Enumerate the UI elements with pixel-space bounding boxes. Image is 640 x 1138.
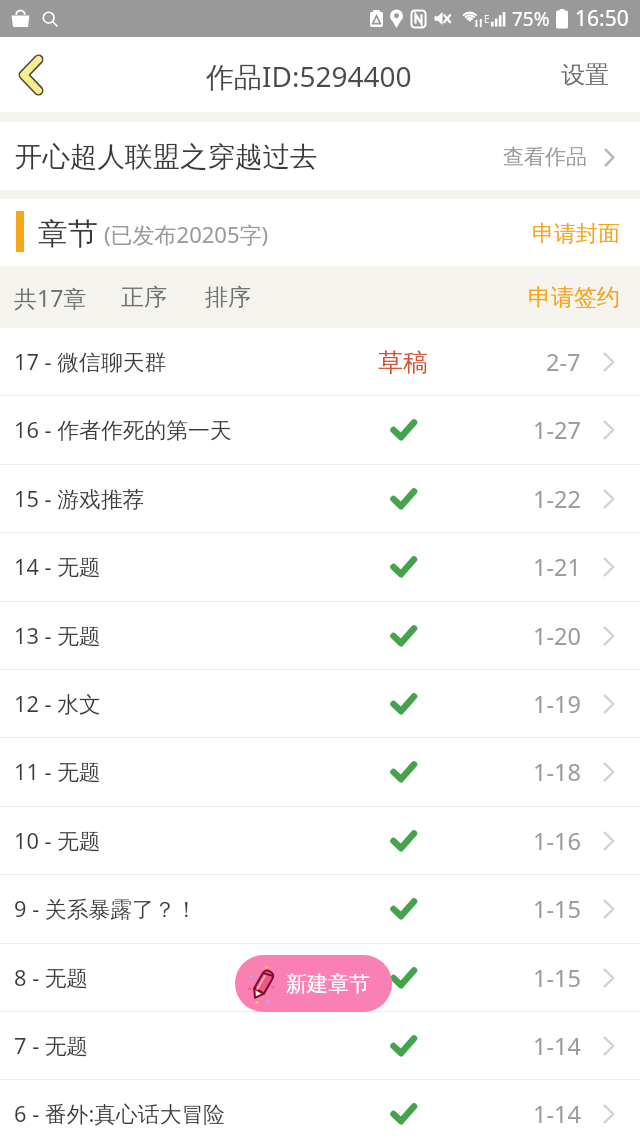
staticText: 10 - 无题 — [14, 826, 101, 856]
staticText: 排序 — [205, 283, 251, 312]
button[interactable]: 设置 — [543, 44, 640, 106]
staticText: 1-16 — [533, 825, 581, 857]
button[interactable]: 8 - 无题 — [0, 944, 640, 1012]
button[interactable]: 9 - 关系暴露了？！ — [0, 875, 640, 943]
button[interactable]: 12 - 水文 — [0, 670, 640, 738]
button[interactable]: 15 - 游戏推荐 — [0, 465, 640, 533]
button[interactable]: Search — [39, 8, 61, 30]
button[interactable]: 开心超人联盟之穿越过去 — [0, 122, 640, 190]
staticText: 13 - 无题 — [14, 621, 101, 651]
staticText: 1-14 — [533, 1030, 581, 1062]
staticText: (已发布20205字) — [104, 219, 269, 249]
staticText: 16:50 — [575, 4, 629, 33]
staticText: 查看作品 — [503, 144, 587, 170]
staticText: 8 - 无题 — [14, 963, 89, 993]
staticText: 1-27 — [533, 414, 581, 446]
staticText: 设置 — [561, 60, 609, 90]
staticText: 16 - 作者作死的第一天 — [14, 415, 232, 445]
staticText: 15 - 游戏推荐 — [14, 484, 145, 514]
button[interactable]: 7 - 无题 — [0, 1012, 640, 1080]
button[interactable]: Back — [0, 45, 60, 105]
button[interactable]: 13 - 无题 — [0, 602, 640, 670]
staticText: 开心超人联盟之穿越过去 — [15, 140, 318, 175]
button[interactable]: Shop — [8, 6, 33, 31]
staticText: 14 - 无题 — [14, 552, 101, 582]
button[interactable]: 申请签约 — [524, 279, 624, 316]
staticText: 1-22 — [533, 483, 581, 515]
staticText: 1-18 — [533, 756, 581, 788]
button[interactable]: 16 - 作者作死的第一天 — [0, 396, 640, 464]
staticText: 1-21 — [533, 551, 581, 583]
button[interactable]: 新建章节 — [235, 955, 392, 1012]
staticText: 草稿 — [378, 347, 428, 378]
button[interactable]: 申请封面 — [528, 216, 624, 252]
staticText: 1-20 — [533, 620, 581, 652]
button[interactable]: 6 - 番外:真心话大冒险 — [0, 1080, 640, 1138]
staticText: 共17章 — [14, 282, 87, 313]
staticText: 1-15 — [533, 962, 581, 994]
button[interactable]: 17 - 微信聊天群 — [0, 328, 640, 396]
staticText: 章节 — [38, 215, 98, 253]
staticText: 1-15 — [533, 893, 581, 925]
button[interactable]: 10 - 无题 — [0, 807, 640, 875]
button[interactable]: 排序 — [201, 279, 255, 316]
button[interactable]: 14 - 无题 — [0, 533, 640, 601]
staticText: 申请签约 — [528, 283, 620, 312]
staticText: 2-7 — [546, 346, 581, 378]
staticText: 申请封面 — [532, 220, 620, 248]
staticText: 作品ID:5294400 — [206, 57, 412, 95]
staticText: E — [484, 12, 490, 26]
staticText: 17 - 微信聊天群 — [14, 347, 167, 377]
staticText: 75% — [512, 6, 550, 32]
staticText: 6 - 番外:真心话大冒险 — [14, 1099, 226, 1129]
staticText: 1-19 — [533, 688, 581, 720]
button[interactable]: 11 - 无题 — [0, 738, 640, 806]
button[interactable]: 正序 — [117, 279, 171, 316]
staticText: 正序 — [121, 283, 167, 312]
staticText: 7 - 无题 — [14, 1031, 89, 1061]
staticText: 1-14 — [533, 1098, 581, 1130]
staticText: 9 - 关系暴露了？！ — [14, 894, 198, 924]
staticText: 新建章节 — [286, 971, 370, 997]
staticText: 11 - 无题 — [14, 757, 101, 787]
staticText: 12 - 水文 — [14, 689, 101, 719]
